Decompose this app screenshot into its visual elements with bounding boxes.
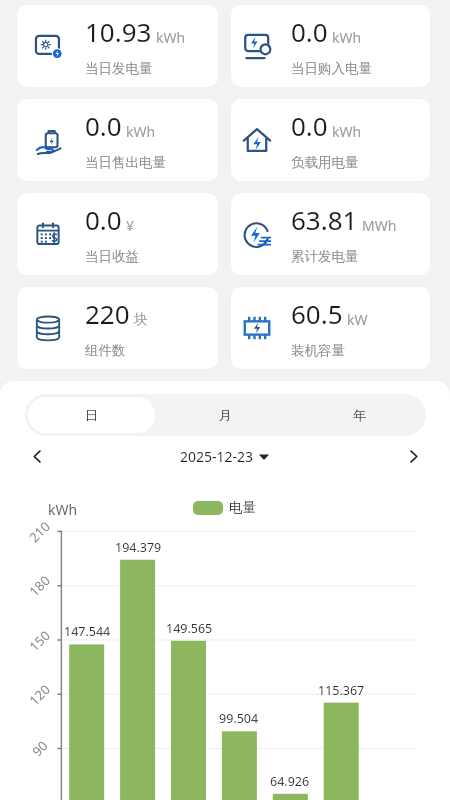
staticText: 147.544 xyxy=(64,623,111,640)
staticText: kWh xyxy=(126,122,156,141)
staticText: kW xyxy=(347,310,368,329)
button[interactable]: 63.81 xyxy=(231,193,430,275)
staticText: 装机容量 xyxy=(291,342,345,359)
staticText: 块 xyxy=(134,311,148,329)
staticText: 0.0 xyxy=(85,202,122,237)
staticText: 组件数 xyxy=(85,342,126,359)
staticText: 60.5 xyxy=(291,296,343,331)
staticText: 99.504 xyxy=(219,710,259,727)
button[interactable]: 10.93 xyxy=(17,5,218,87)
staticText: 0.0 xyxy=(85,108,122,143)
staticText: kWh xyxy=(332,28,362,47)
staticText: 149.565 xyxy=(166,620,213,637)
staticText: 月 xyxy=(219,407,232,423)
button[interactable]: Next day xyxy=(398,441,428,471)
staticText: 220 xyxy=(85,296,130,331)
staticText: 115.367 xyxy=(318,682,365,699)
staticText: 当日购入电量 xyxy=(291,60,372,77)
button[interactable]: 日 xyxy=(28,397,155,433)
staticText: kWh xyxy=(48,500,78,519)
staticText: 当日发电量 xyxy=(85,60,153,77)
button[interactable]: 0.0 xyxy=(17,99,218,181)
staticText: 0.0 xyxy=(291,108,328,143)
button[interactable]: 0.0 xyxy=(231,5,430,87)
staticText: 194.379 xyxy=(115,539,162,556)
staticText: 120 xyxy=(25,680,54,709)
staticText: 当日售出电量 xyxy=(85,154,166,171)
button[interactable]: 60.5 xyxy=(231,287,430,369)
staticText: 日 xyxy=(85,407,98,423)
staticText: 当日收益 xyxy=(85,248,139,265)
staticText: 210 xyxy=(25,517,54,546)
staticText: 10.93 xyxy=(85,14,152,49)
button[interactable]: Previous day xyxy=(22,441,52,471)
staticText: 64.926 xyxy=(270,773,310,790)
staticText: kWh xyxy=(332,122,362,141)
button[interactable]: 月 xyxy=(161,397,289,433)
staticText: 63.81 xyxy=(291,202,358,237)
staticText: 180 xyxy=(25,571,54,600)
staticText: 90 xyxy=(28,737,51,760)
button[interactable]: 年 xyxy=(295,397,423,433)
button[interactable]: 2025-12-23 xyxy=(180,447,270,466)
staticText: 电量 xyxy=(229,499,256,516)
staticText: 负载用电量 xyxy=(291,154,359,171)
staticText: ¥ xyxy=(126,216,135,235)
button[interactable]: 0.0 xyxy=(17,193,218,275)
staticText: 年 xyxy=(353,407,366,423)
button[interactable]: 0.0 xyxy=(231,99,430,181)
staticText: MWh xyxy=(362,216,397,235)
button[interactable]: 220 xyxy=(17,287,218,369)
staticText: kWh xyxy=(156,28,186,47)
staticText: 2025-12-23 xyxy=(180,447,254,466)
staticText: 150 xyxy=(25,626,54,655)
staticText: 累计发电量 xyxy=(291,248,359,265)
staticText: 0.0 xyxy=(291,14,328,49)
